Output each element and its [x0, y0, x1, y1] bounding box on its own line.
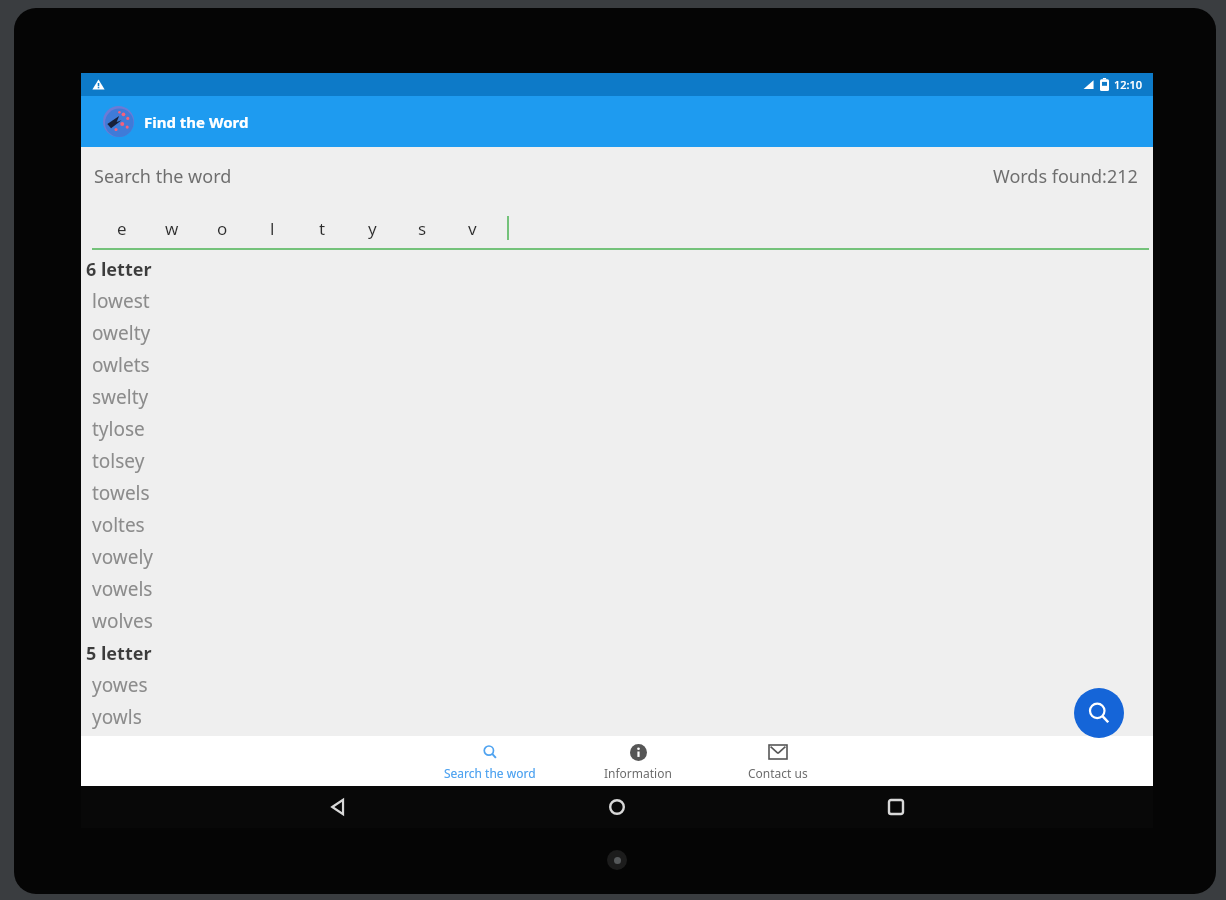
staticText: voltes [92, 512, 145, 538]
staticText: vowely [92, 544, 154, 570]
button[interactable]: Home [595, 786, 639, 828]
button[interactable]: 6 letter [81, 253, 1153, 285]
button[interactable]: lowest [81, 285, 1153, 317]
button[interactable]: Search the word [415, 736, 565, 786]
staticText: w [165, 217, 179, 240]
staticText: 5 letter [86, 641, 152, 666]
button[interactable]: Information [573, 736, 703, 786]
button[interactable]: Search [1074, 688, 1124, 738]
staticText: tylose [92, 416, 145, 442]
staticText: 6 letter [86, 257, 152, 282]
button[interactable]: tolsey [81, 445, 1153, 477]
staticText: o [217, 217, 228, 240]
button[interactable]: voltes [81, 509, 1153, 541]
staticText: yowls [92, 704, 142, 730]
button[interactable]: owelty [81, 317, 1153, 349]
staticText: lowest [92, 288, 150, 314]
staticText: vowels [92, 576, 153, 602]
staticText: v [468, 217, 477, 240]
staticText: Find the Word [144, 112, 249, 132]
staticText: owlets [92, 352, 150, 378]
button[interactable]: Back [316, 786, 360, 828]
button[interactable]: vowels [81, 573, 1153, 605]
staticText: yowes [92, 672, 148, 698]
staticText: y [368, 217, 377, 240]
button[interactable]: wolves [81, 605, 1153, 637]
staticText: Search the word [444, 765, 536, 781]
button[interactable]: Recent apps [874, 786, 918, 828]
staticText: e [117, 217, 127, 240]
button[interactable]: swelty [81, 381, 1153, 413]
staticText: 12:10 [1114, 77, 1143, 92]
staticText: Information [604, 765, 672, 781]
staticText: tolsey [92, 448, 145, 474]
button[interactable]: e [81, 205, 1153, 250]
staticText: Words found:212 [993, 164, 1138, 189]
staticText: s [418, 217, 427, 240]
staticText: Contact us [748, 765, 808, 781]
staticText: wolves [92, 608, 153, 634]
button[interactable]: owlets [81, 349, 1153, 381]
button[interactable]: towels [81, 477, 1153, 509]
staticText: towels [92, 480, 150, 506]
staticText: l [270, 217, 275, 240]
button[interactable]: 5 letter [81, 637, 1153, 669]
staticText: t [319, 217, 326, 240]
button[interactable]: yowes [81, 669, 1153, 701]
button[interactable]: vowely [81, 541, 1153, 573]
button[interactable]: Contact us [713, 736, 843, 786]
staticText: Search the word [94, 164, 232, 189]
button[interactable]: tylose [81, 413, 1153, 445]
button[interactable]: yowls [81, 701, 1153, 733]
staticText: swelty [92, 384, 149, 410]
staticText: owelty [92, 320, 151, 346]
